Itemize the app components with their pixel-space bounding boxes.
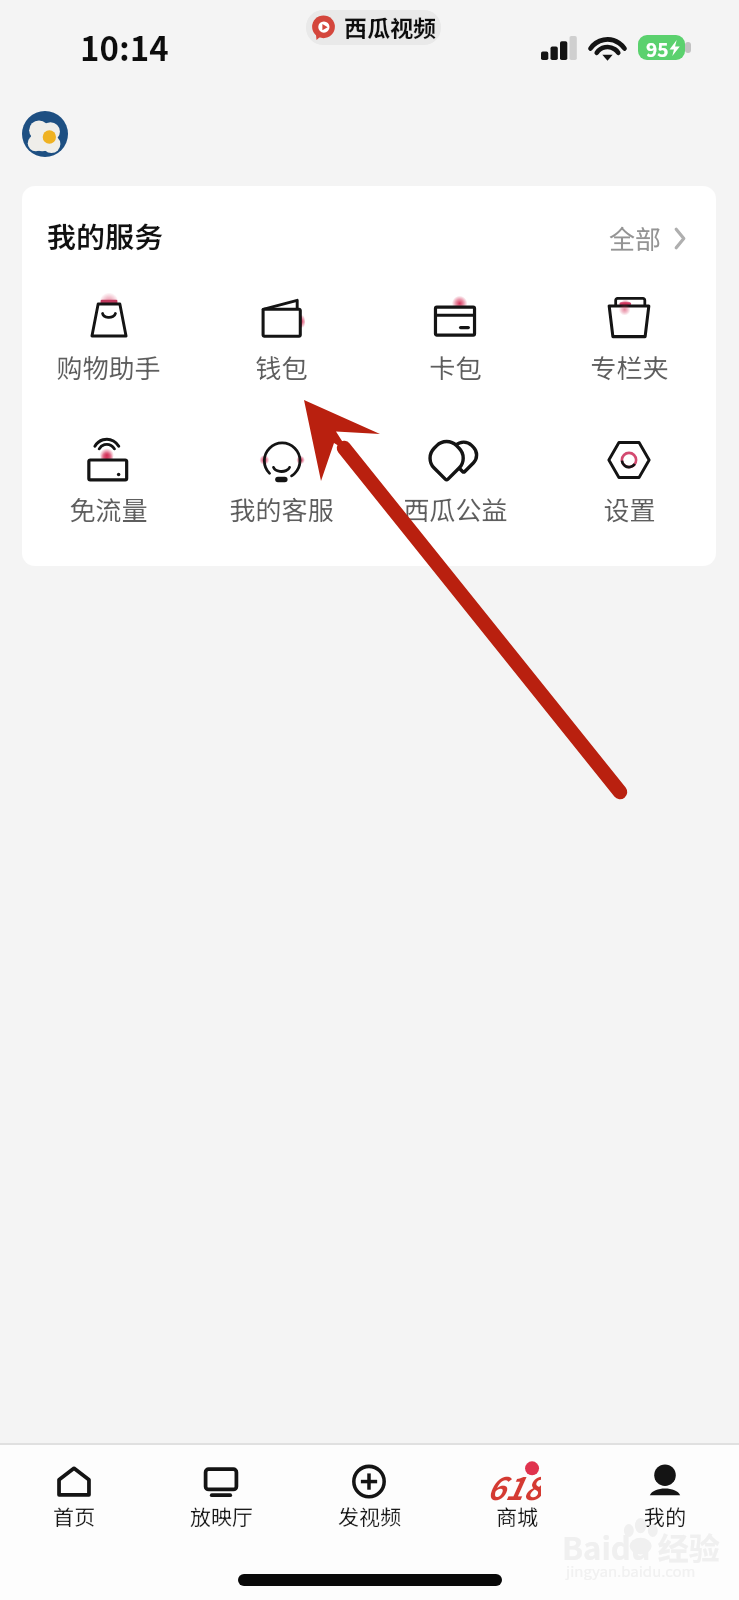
button[interactable]: 西瓜公益 [368, 429, 542, 529]
staticText: 全部 [609, 219, 662, 257]
staticText: 95 [646, 35, 669, 60]
staticText: 我的 [644, 1501, 686, 1531]
button[interactable]: 专栏夹 [542, 287, 716, 387]
staticText: jingyan.baidu.com [566, 1560, 696, 1582]
button[interactable]: 首页 [0, 1456, 147, 1538]
button[interactable]: 购物助手 [22, 287, 195, 387]
staticText: 我的服务 [47, 214, 164, 256]
button[interactable]: 放映厅 [147, 1456, 295, 1538]
button[interactable]: 商城 [443, 1456, 591, 1538]
button[interactable]: 钱包 [195, 287, 368, 387]
staticText: 免流量 [69, 490, 148, 528]
staticText: 西瓜公益 [403, 490, 508, 528]
button[interactable]: 免流量 [22, 429, 195, 529]
staticText: 设置 [603, 490, 656, 528]
staticText: 卡包 [429, 348, 482, 386]
staticText: 10:14 [80, 23, 169, 71]
staticText: 618 [486, 1464, 541, 1508]
button[interactable]: 全部 View all services [605, 217, 689, 259]
staticText: 放映厅 [190, 1501, 253, 1531]
button[interactable]: 发视频 [295, 1456, 443, 1538]
button[interactable]: 我的客服 [195, 429, 368, 529]
button[interactable]: 设置 [542, 429, 716, 529]
button[interactable]: Profile avatar [22, 111, 68, 157]
staticText: 专栏夹 [590, 348, 669, 386]
staticText: 购物助手 [56, 348, 161, 386]
staticText: 发视频 [338, 1501, 401, 1531]
button[interactable]: 我的 [591, 1456, 739, 1538]
staticText: 我的客服 [229, 490, 334, 528]
staticText: 钱包 [255, 348, 308, 386]
staticText: 商城 [496, 1501, 538, 1531]
staticText: 西瓜视频 [344, 10, 436, 43]
button[interactable]: 卡包 [368, 287, 542, 387]
staticText: 首页 [53, 1501, 95, 1531]
button[interactable]: Xigua Video app badge [311, 11, 436, 44]
staticText: Baidu 经验 [562, 1524, 720, 1569]
